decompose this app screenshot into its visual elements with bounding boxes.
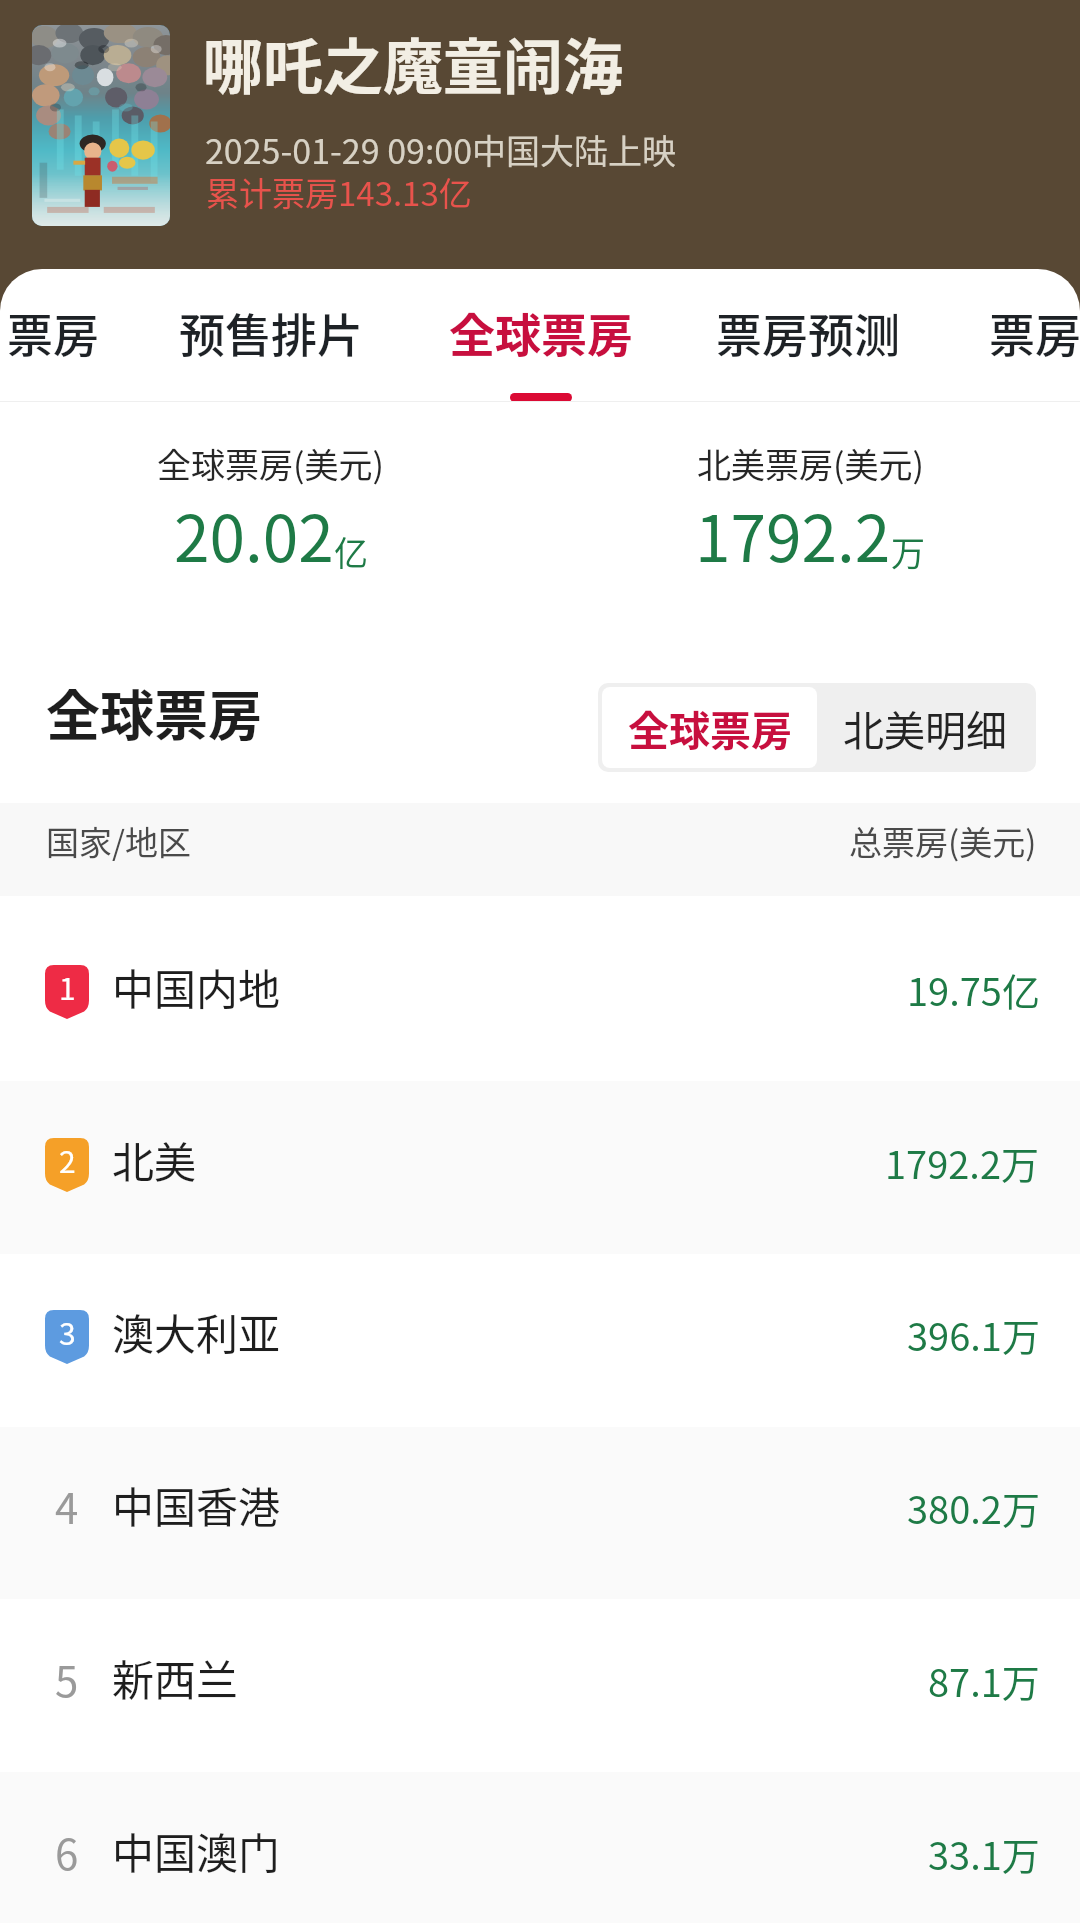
staticText: 票房预测 (716, 299, 900, 366)
staticText: 6 (55, 1821, 79, 1879)
staticText: 1792.2 (695, 488, 891, 581)
staticText: 2 (59, 1138, 76, 1178)
button[interactable]: 5 (0, 1599, 1080, 1772)
staticText: 2025-01-29 09:00中国大陆上映 (205, 125, 677, 174)
staticText: 3 (59, 1310, 76, 1350)
button[interactable]: 票房 (0, 269, 187, 402)
staticText: 380.2万 (907, 1480, 1040, 1535)
button[interactable]: 票房预测 (674, 269, 942, 402)
staticText: 20.02 (174, 488, 334, 581)
button[interactable]: 4 (0, 1427, 1080, 1599)
button[interactable]: 1 (0, 900, 1080, 1081)
staticText: 票房 (7, 299, 99, 366)
staticText: 87.1万 (928, 1653, 1040, 1708)
staticText: 预售排片 (179, 299, 363, 366)
button[interactable]: 2 (0, 1081, 1080, 1254)
staticText: 中国澳门 (112, 1820, 281, 1878)
staticText: 万 (891, 527, 925, 576)
staticText: 累计票房143.13亿 (206, 168, 472, 216)
button[interactable]: 6 (0, 1772, 1080, 1923)
button[interactable]: 全球票房 (602, 687, 817, 768)
staticText: 全球票房 (449, 299, 633, 366)
staticText: 396.1万 (907, 1307, 1040, 1362)
staticText: 全球票房 (628, 698, 792, 757)
staticText: 哪吒之魔童闹海 (203, 19, 623, 106)
staticText: 北美票房(美元) (697, 439, 924, 488)
staticText: 新西兰 (112, 1647, 239, 1705)
staticText: 33.1万 (928, 1826, 1040, 1881)
staticText: 4 (55, 1475, 79, 1533)
staticText: 北美明细 (843, 698, 1007, 757)
staticText: 1792.2万 (885, 1135, 1040, 1190)
staticText: 19.75亿 (907, 962, 1040, 1017)
button[interactable]: 票房 (901, 269, 1080, 402)
staticText: 全球票房 (46, 673, 262, 751)
button[interactable]: 3 (0, 1254, 1080, 1427)
staticText: 5 (55, 1648, 79, 1706)
staticText: 1 (59, 965, 76, 1005)
staticText: 中国内地 (112, 956, 281, 1014)
staticText: 澳大利亚 (112, 1301, 281, 1359)
button[interactable]: 北美明细 (817, 687, 1032, 768)
staticText: 北美 (112, 1129, 197, 1187)
staticText: 全球票房(美元) (157, 439, 384, 488)
staticText: 中国香港 (112, 1474, 281, 1532)
staticText: 总票房(美元) (849, 817, 1037, 865)
button[interactable]: 全球票房 (407, 269, 675, 402)
staticText: 票房 (989, 299, 1080, 366)
button[interactable]: 预售排片 (137, 269, 405, 402)
staticText: 亿 (334, 527, 368, 576)
staticText: 国家/地区 (46, 817, 191, 865)
